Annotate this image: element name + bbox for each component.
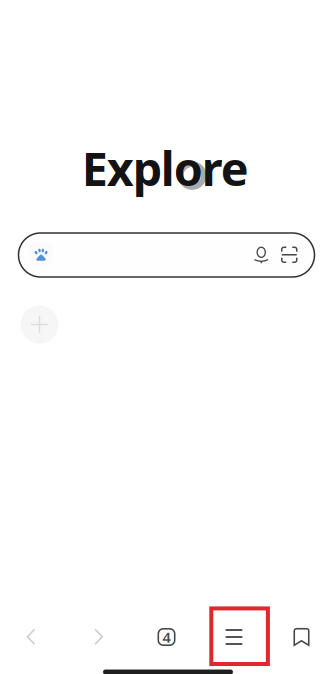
button[interactable] xyxy=(18,232,315,278)
button[interactable]: Bookmarks xyxy=(273,613,329,661)
button[interactable]: Tabs, 4 open xyxy=(138,613,194,661)
button[interactable]: Forward xyxy=(71,613,127,661)
button[interactable]: Add shortcut xyxy=(20,305,58,343)
staticText: 4 xyxy=(162,627,170,647)
button[interactable]: Back xyxy=(3,613,59,661)
staticText: Explore xyxy=(82,137,249,199)
button[interactable]: Menu xyxy=(204,606,272,667)
